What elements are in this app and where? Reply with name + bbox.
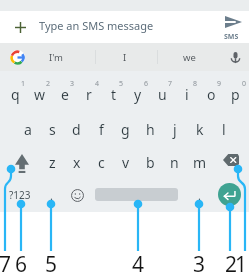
button[interactable]: i — [174, 77, 199, 111]
button[interactable]: Send SMS — [215, 12, 249, 42]
button[interactable]: x — [64, 145, 89, 179]
button[interactable]: h — [138, 112, 163, 146]
button[interactable]: o — [199, 77, 224, 111]
staticText: I — [123, 51, 127, 64]
button[interactable]: m — [187, 145, 212, 179]
staticText: I'm — [49, 51, 63, 64]
staticText: a — [24, 120, 32, 139]
button[interactable]: a — [15, 112, 40, 146]
staticText: 5 — [45, 250, 58, 276]
staticText: z — [49, 153, 56, 172]
button[interactable]: s — [40, 112, 65, 146]
staticText: 9 — [217, 79, 222, 89]
staticText: b — [146, 153, 155, 172]
button[interactable]: Emoji — [64, 178, 90, 212]
button[interactable]: w — [27, 77, 52, 111]
staticText: 1 — [21, 79, 26, 89]
staticText: m — [193, 153, 207, 172]
staticText: i — [185, 85, 189, 104]
staticText: g — [121, 120, 130, 139]
staticText: r — [86, 85, 92, 104]
staticText: 7 — [168, 79, 173, 89]
button[interactable]: q — [3, 77, 28, 111]
staticText: . — [198, 188, 201, 203]
button[interactable]: k — [187, 112, 212, 146]
staticText: 3 — [70, 79, 75, 89]
button[interactable]: j — [162, 112, 187, 146]
staticText: h — [146, 120, 155, 139]
staticText: k — [196, 120, 204, 139]
button[interactable]: c — [89, 145, 114, 179]
button[interactable]: I — [101, 43, 149, 71]
staticText: w — [34, 85, 46, 104]
button[interactable]: e — [52, 77, 77, 111]
staticText: 4 — [132, 250, 145, 276]
button[interactable]: g — [113, 112, 138, 146]
staticText: c — [98, 153, 105, 172]
button[interactable]: . — [189, 178, 209, 212]
staticText: y — [134, 85, 142, 104]
staticText: 6 — [144, 79, 149, 89]
staticText: 8 — [193, 79, 198, 89]
staticText: e — [61, 85, 69, 104]
staticText: 7 — [0, 250, 12, 276]
staticText: we — [183, 51, 196, 64]
staticText: 0 — [242, 79, 247, 89]
button[interactable]: r — [76, 77, 101, 111]
button[interactable]: we — [165, 43, 213, 71]
button[interactable]: y — [125, 77, 150, 111]
button[interactable]: u — [150, 77, 175, 111]
button[interactable]: l — [211, 112, 236, 146]
button[interactable]: b — [138, 145, 163, 179]
staticText: 3 — [193, 250, 206, 276]
staticText: ?123 — [9, 188, 31, 202]
staticText: l — [222, 120, 226, 139]
button[interactable]: t — [101, 77, 126, 111]
button[interactable]: Google — [6, 46, 28, 68]
button[interactable]: I'm — [32, 43, 80, 71]
button[interactable]: z — [40, 145, 65, 179]
staticText: 2 — [225, 250, 238, 276]
button[interactable]: Type an SMS message — [39, 13, 199, 37]
button[interactable]: Shift — [3, 146, 40, 180]
staticText: x — [73, 153, 81, 172]
button[interactable]: d — [64, 112, 89, 146]
staticText: SMS — [224, 32, 239, 42]
staticText: o — [207, 85, 216, 104]
staticText: j — [173, 120, 177, 139]
button[interactable]: . — [41, 178, 61, 212]
staticText: n — [170, 153, 179, 172]
button[interactable]: Voice input — [224, 46, 246, 68]
staticText: 5 — [119, 79, 124, 89]
button[interactable]: v — [113, 145, 138, 179]
staticText: t — [111, 85, 117, 104]
staticText: q — [11, 85, 20, 104]
button[interactable]: Enter — [218, 183, 241, 206]
staticText: . — [50, 188, 53, 203]
staticText: s — [49, 120, 56, 139]
button[interactable]: Backspace — [212, 143, 249, 177]
staticText: 4 — [95, 79, 100, 89]
staticText: 6 — [15, 250, 28, 276]
button[interactable]: ?123 — [0, 178, 40, 212]
button[interactable]: p — [223, 77, 248, 111]
staticText: d — [72, 120, 81, 139]
button[interactable]: n — [162, 145, 187, 179]
staticText: p — [231, 85, 240, 104]
staticText: v — [122, 153, 130, 172]
staticText: Type an SMS message — [39, 18, 154, 33]
staticText: 2 — [46, 79, 51, 89]
staticText: 1 — [235, 250, 248, 276]
button[interactable]: Add attachment — [9, 16, 31, 38]
staticText: f — [99, 120, 104, 139]
button[interactable]: Space — [95, 188, 178, 201]
button[interactable]: f — [89, 112, 114, 146]
staticText: u — [158, 85, 167, 104]
